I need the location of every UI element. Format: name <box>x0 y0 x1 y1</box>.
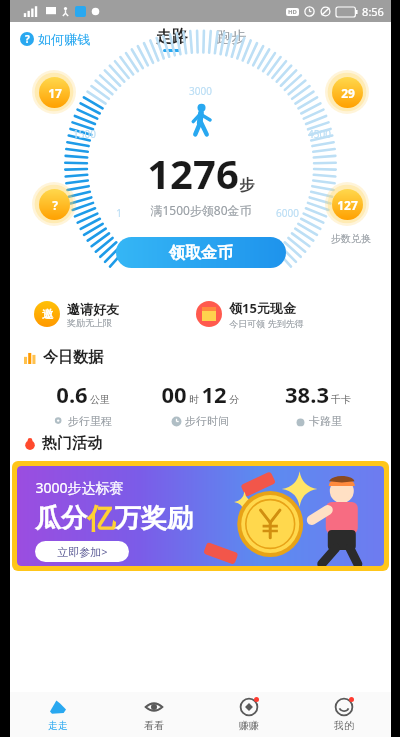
staticText: ? <box>52 197 58 213</box>
staticText: 3000步达标赛 <box>35 478 124 497</box>
staticText: 亿 <box>87 501 115 536</box>
staticText: ? <box>25 32 30 46</box>
staticText: 1500 <box>73 127 96 141</box>
staticText: 满1500步领80金币 <box>150 202 252 218</box>
staticText: 4500 <box>308 127 331 141</box>
staticText: 步数兑换 <box>331 232 371 245</box>
staticText: 3000 <box>189 84 212 98</box>
button[interactable]: 邀 <box>22 290 196 338</box>
staticText: 今日数据 <box>43 348 103 367</box>
staticText: 步行里程 <box>68 414 112 428</box>
staticText: 12 <box>201 379 227 409</box>
button[interactable]: 17 <box>32 70 76 114</box>
staticText: 公里 <box>90 393 110 406</box>
staticText: 步行时间 <box>185 414 229 428</box>
staticText: 今日可领 先到先得 <box>229 317 304 329</box>
staticText: 时 <box>189 393 199 406</box>
staticText: 127 <box>337 197 358 213</box>
staticText: 如何赚钱 <box>38 31 90 47</box>
staticText: 立即参加> <box>57 544 108 559</box>
staticText: 万奖励 <box>115 502 193 535</box>
staticText: 邀 <box>42 307 53 321</box>
staticText: 38.3 <box>285 379 329 409</box>
staticText: 卡路里 <box>309 414 342 428</box>
staticText: 走路 <box>156 27 188 47</box>
staticText: 分 <box>229 393 239 406</box>
button[interactable]: 走走 <box>10 692 106 737</box>
button[interactable]: ? <box>32 182 76 226</box>
button[interactable]: 我的 <box>296 692 391 737</box>
button[interactable]: 29 <box>325 70 369 114</box>
staticText: 热门活动 <box>42 434 102 453</box>
staticText: 我的 <box>334 719 354 732</box>
staticText: 领15元现金 <box>229 299 296 317</box>
button[interactable]: 领取金币 <box>116 237 286 268</box>
button[interactable]: 立即参加> <box>35 541 129 562</box>
staticText: 1 <box>116 206 122 220</box>
staticText: 0.6 <box>56 379 88 409</box>
staticText: 29 <box>341 85 355 101</box>
button[interactable]: 领15元现金 <box>196 290 379 338</box>
button[interactable]: 3000步达标赛 <box>17 466 384 566</box>
staticText: 6000 <box>276 206 299 220</box>
button[interactable]: 127 <box>325 182 369 226</box>
staticText: 步 <box>239 176 254 195</box>
staticText: 17 <box>48 85 62 101</box>
staticText: 赚赚 <box>239 719 259 732</box>
staticText: 00 <box>161 379 187 409</box>
staticText: 领取金币 <box>169 243 233 263</box>
button[interactable]: 看看 <box>106 692 201 737</box>
staticText: 8:56 <box>362 4 384 19</box>
staticText: 邀请好友 <box>67 301 119 317</box>
staticText: 瓜分 <box>35 502 87 535</box>
staticText: 跑步 <box>216 28 246 47</box>
staticText: HD <box>288 8 297 16</box>
staticText: 走走 <box>48 719 68 732</box>
staticText: 1276 <box>147 146 239 200</box>
button[interactable]: ? <box>20 31 90 47</box>
staticText: 千卡 <box>331 393 351 406</box>
button[interactable]: 跑步 <box>216 28 246 51</box>
staticText: 奖励无上限 <box>67 317 112 328</box>
button[interactable]: 走路 <box>156 27 188 52</box>
staticText: 看看 <box>144 719 164 732</box>
button[interactable]: 赚赚 <box>201 692 296 737</box>
